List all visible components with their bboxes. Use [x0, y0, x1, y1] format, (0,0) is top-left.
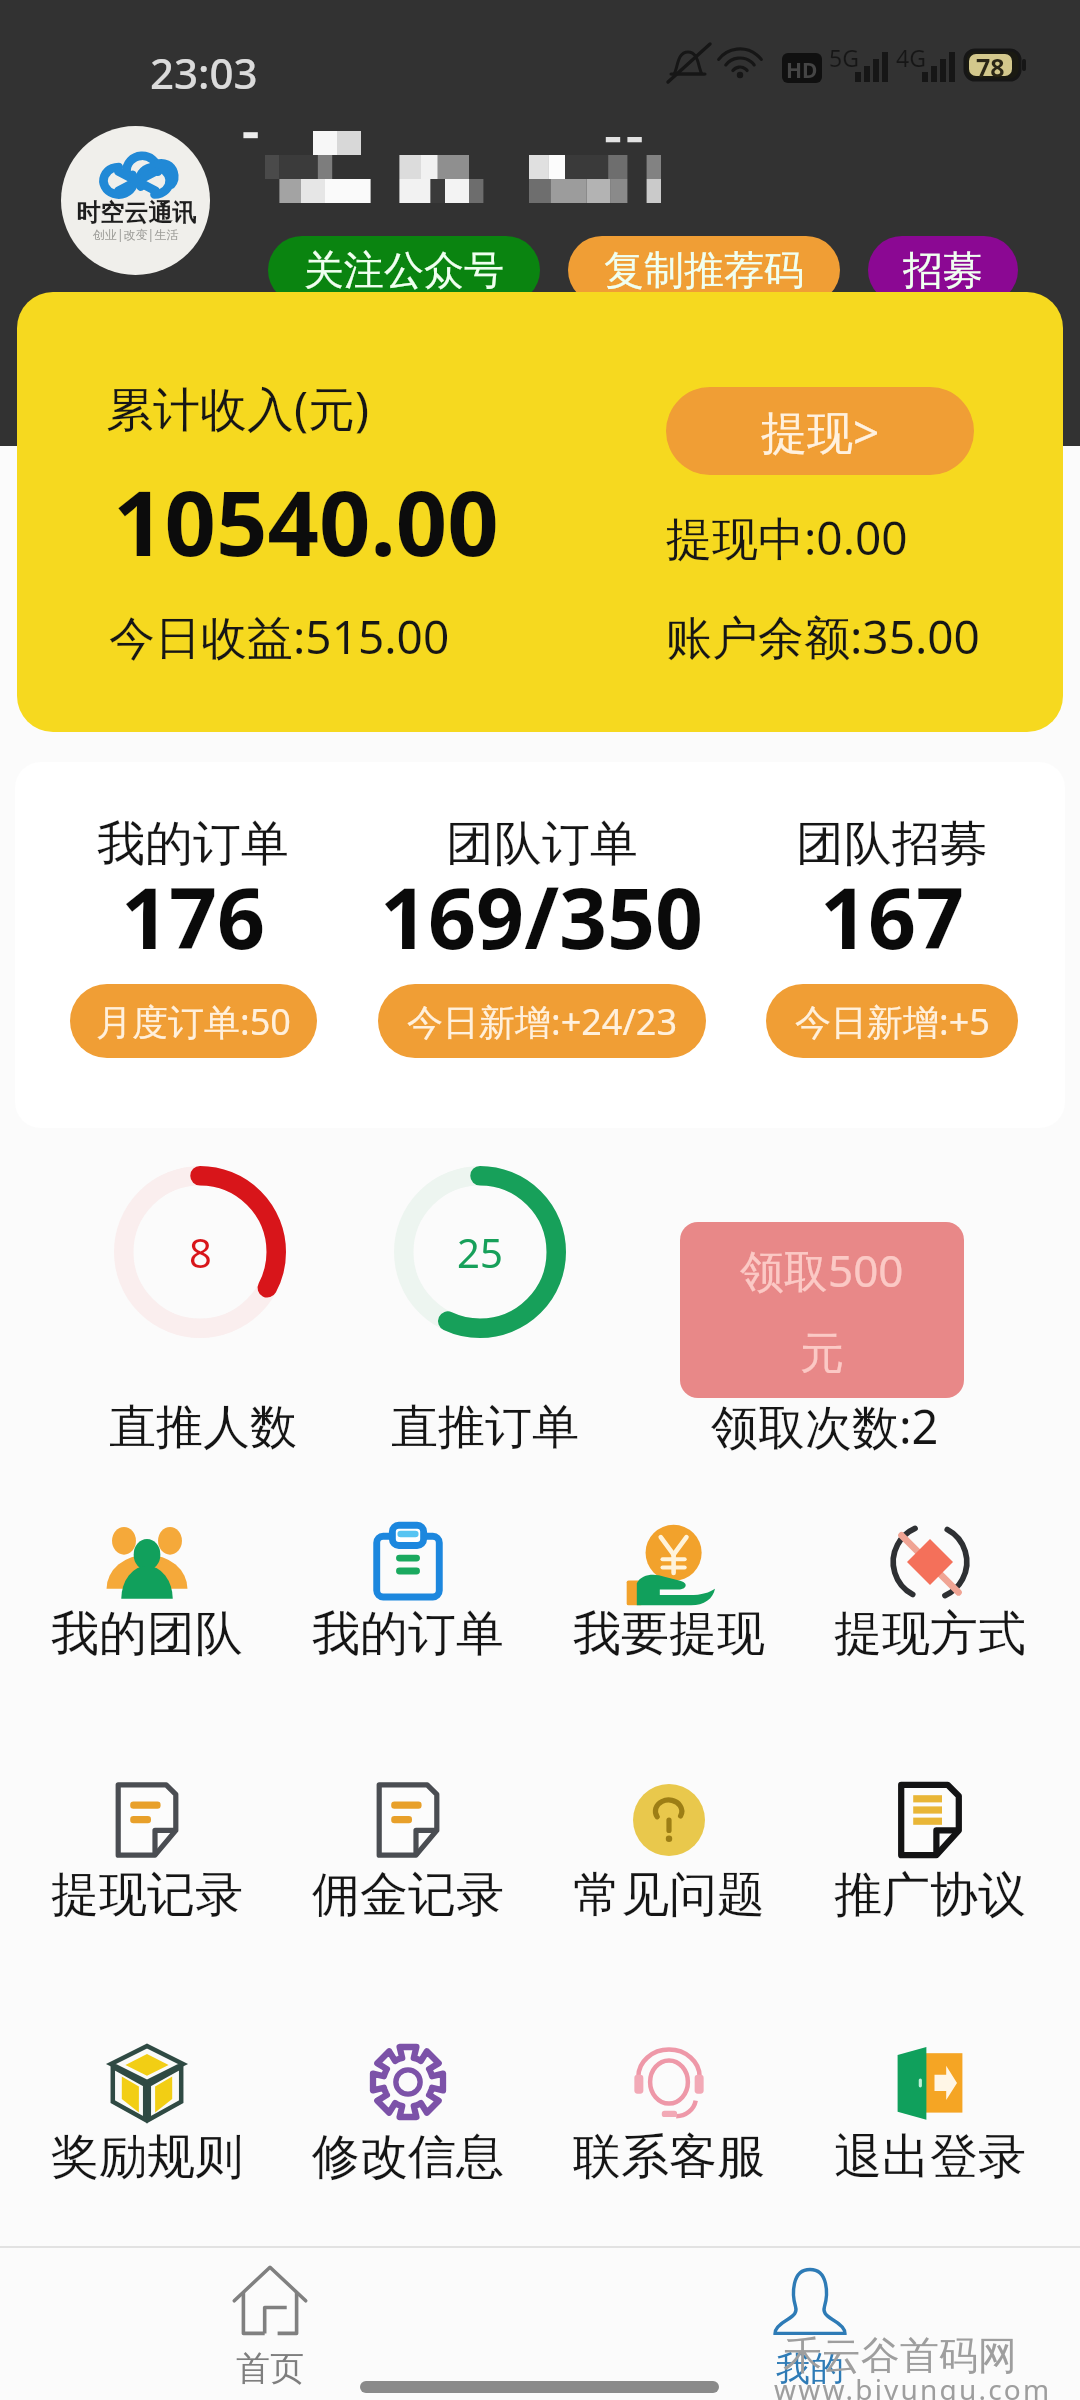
staticText: 176	[121, 859, 266, 973]
button[interactable]: 佣金记录	[278, 1774, 538, 1924]
button[interactable]: 修改信息	[278, 2031, 538, 2181]
staticText: 累计收入(元)	[106, 376, 370, 440]
staticText: 今日收益:515.00	[109, 605, 450, 668]
staticText: 我要提现	[573, 1604, 765, 1664]
staticText: 退出登录	[834, 2127, 1026, 2187]
staticText: 团队订单	[446, 814, 638, 874]
staticText: 10540.00	[113, 460, 499, 583]
staticText: 修改信息	[312, 2127, 504, 2187]
button[interactable]: 直推订单 25	[394, 1166, 566, 1338]
staticText: 提现记录	[51, 1865, 243, 1925]
staticText: 领取次数:2	[711, 1394, 939, 1458]
button[interactable]: 我的订单	[278, 1510, 538, 1660]
button[interactable]: 领取500	[680, 1222, 964, 1398]
staticText: 奖励规则	[51, 2127, 243, 2187]
staticText: 团队招募	[796, 814, 988, 874]
staticText: 23:03	[150, 44, 258, 101]
button[interactable]: 复制推荐码	[568, 236, 840, 304]
staticText: 4G	[896, 42, 926, 73]
staticText: www.biyungu.com	[774, 2370, 1052, 2400]
staticText: 佣金记录	[312, 1865, 504, 1925]
staticText: 今日新增:+24/23	[407, 997, 678, 1046]
staticText: 78	[976, 50, 1005, 84]
button[interactable]: 首页	[135, 2265, 405, 2390]
button[interactable]: 退出登录	[800, 2031, 1060, 2181]
button[interactable]: 关注公众号	[268, 236, 540, 304]
button[interactable]: 常见问题	[539, 1774, 799, 1924]
button[interactable]: 我的	[675, 2265, 945, 2390]
button[interactable]: 我的订单	[0, 800, 393, 1070]
button[interactable]: 我的团队	[17, 1510, 277, 1660]
staticText: 招募	[903, 245, 983, 295]
staticText: 25	[457, 1225, 503, 1279]
staticText: 首页	[236, 2347, 304, 2390]
staticText: 联系客服	[573, 2127, 765, 2187]
button[interactable]: 提现记录	[17, 1774, 277, 1924]
staticText: 我的订单	[312, 1604, 504, 1664]
staticText: 167	[820, 859, 965, 973]
button[interactable]: 直推人数 8	[114, 1166, 286, 1338]
staticText: 元	[800, 1326, 844, 1381]
button[interactable]: 团队招募	[692, 800, 1080, 1070]
staticText: 创业|改变|生活	[93, 226, 179, 242]
staticText: 月度订单:50	[96, 997, 291, 1046]
staticText: 8	[189, 1225, 212, 1279]
button[interactable]: 推广协议	[800, 1774, 1060, 1924]
staticText: 直推人数	[109, 1398, 297, 1457]
staticText: 我的	[776, 2347, 844, 2390]
staticText: HD	[786, 56, 818, 85]
staticText: 复制推荐码	[604, 245, 804, 295]
staticText: 提现方式	[834, 1604, 1026, 1664]
button[interactable]: Profile avatar	[61, 126, 210, 275]
staticText: 直推订单	[391, 1398, 579, 1457]
staticText: 我的订单	[97, 814, 289, 874]
button[interactable]: 联系客服	[539, 2031, 799, 2181]
staticText: 169/350	[380, 859, 704, 973]
staticText: 关注公众号	[304, 245, 504, 295]
staticText: 账户余额:35.00	[666, 605, 980, 668]
staticText: 5G	[829, 42, 859, 73]
button[interactable]: 提现方式	[800, 1510, 1060, 1660]
staticText: 禾云谷首码网	[783, 2331, 1017, 2380]
staticText: 时空云通讯	[76, 198, 196, 228]
staticText: 领取500	[740, 1240, 904, 1300]
button[interactable]: 招募	[868, 236, 1018, 304]
button[interactable]: 我要提现	[539, 1510, 799, 1660]
staticText: 提现中:0.00	[666, 506, 908, 569]
staticText: 提现>	[761, 400, 880, 463]
staticText: 我的团队	[51, 1604, 243, 1664]
staticText: 常见问题	[573, 1865, 765, 1925]
staticText: 推广协议	[834, 1865, 1026, 1925]
button[interactable]: 团队订单	[342, 800, 742, 1070]
button[interactable]: 提现>	[666, 387, 974, 475]
staticText: 今日新增:+5	[795, 997, 990, 1046]
button[interactable]: 奖励规则	[17, 2031, 277, 2181]
